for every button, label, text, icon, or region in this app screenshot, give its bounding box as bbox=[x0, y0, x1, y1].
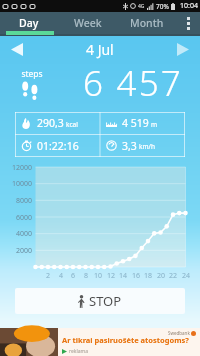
staticText: 01:22:16 bbox=[37, 139, 79, 153]
button[interactable]: Next day bbox=[172, 41, 194, 57]
button[interactable]: Week bbox=[58, 12, 118, 34]
staticText: STOP bbox=[89, 292, 122, 310]
staticText: 3,3 bbox=[122, 139, 137, 153]
staticText: 10:04 bbox=[180, 1, 198, 11]
staticText: Ar tikrai pasiruošėte atostogoms? bbox=[62, 335, 189, 345]
staticText: Day bbox=[19, 16, 39, 30]
button[interactable]: 290,3 bbox=[15, 112, 100, 134]
staticText: 10000 bbox=[0, 179, 32, 189]
staticText: 6 457 bbox=[83, 59, 184, 103]
staticText: Month bbox=[130, 16, 164, 30]
staticText: 14 bbox=[113, 271, 133, 281]
staticText: 24 bbox=[176, 271, 196, 281]
staticText: 10 bbox=[88, 271, 108, 281]
staticText: 16 bbox=[126, 271, 146, 281]
staticText: 6000 bbox=[0, 213, 32, 223]
button[interactable]: Day bbox=[0, 12, 58, 34]
staticText: 22 bbox=[163, 271, 183, 281]
staticText: km/h bbox=[139, 142, 155, 151]
staticText: 2000 bbox=[0, 246, 32, 256]
staticText: reklama bbox=[69, 348, 89, 355]
button[interactable]: More options bbox=[176, 12, 200, 34]
button[interactable]: 3,3 bbox=[100, 134, 185, 157]
staticText: Week bbox=[74, 16, 102, 30]
staticText: 12000 bbox=[0, 163, 32, 173]
staticText: 12 bbox=[101, 271, 121, 281]
button[interactable]: Ar tikrai pasiruošėte atostogoms? bbox=[0, 328, 200, 356]
staticText: 290,3 bbox=[37, 116, 64, 130]
staticText: 4 Jul bbox=[86, 40, 114, 59]
staticText: 20 bbox=[151, 271, 171, 281]
staticText: kcal bbox=[66, 120, 78, 129]
button[interactable]: Month bbox=[118, 12, 176, 34]
staticText: 4 bbox=[51, 271, 71, 281]
staticText: 70% bbox=[156, 2, 169, 11]
staticText: 4 519 bbox=[122, 116, 149, 130]
staticText: 2 bbox=[38, 271, 58, 281]
staticText: 8 bbox=[76, 271, 96, 281]
staticText: Swedbank bbox=[168, 330, 190, 336]
button[interactable]: STOP bbox=[15, 288, 185, 314]
button[interactable]: Previous day bbox=[6, 41, 28, 57]
staticText: m bbox=[151, 120, 158, 129]
button[interactable]: 4 519 bbox=[100, 112, 185, 134]
staticText: 4000 bbox=[0, 229, 32, 239]
staticText: 8000 bbox=[0, 196, 32, 206]
staticText: 4G bbox=[138, 3, 145, 10]
staticText: steps bbox=[17, 68, 47, 80]
staticText: 18 bbox=[138, 271, 158, 281]
staticText: 6 bbox=[63, 271, 83, 281]
button[interactable]: 01:22:16 bbox=[15, 134, 100, 157]
